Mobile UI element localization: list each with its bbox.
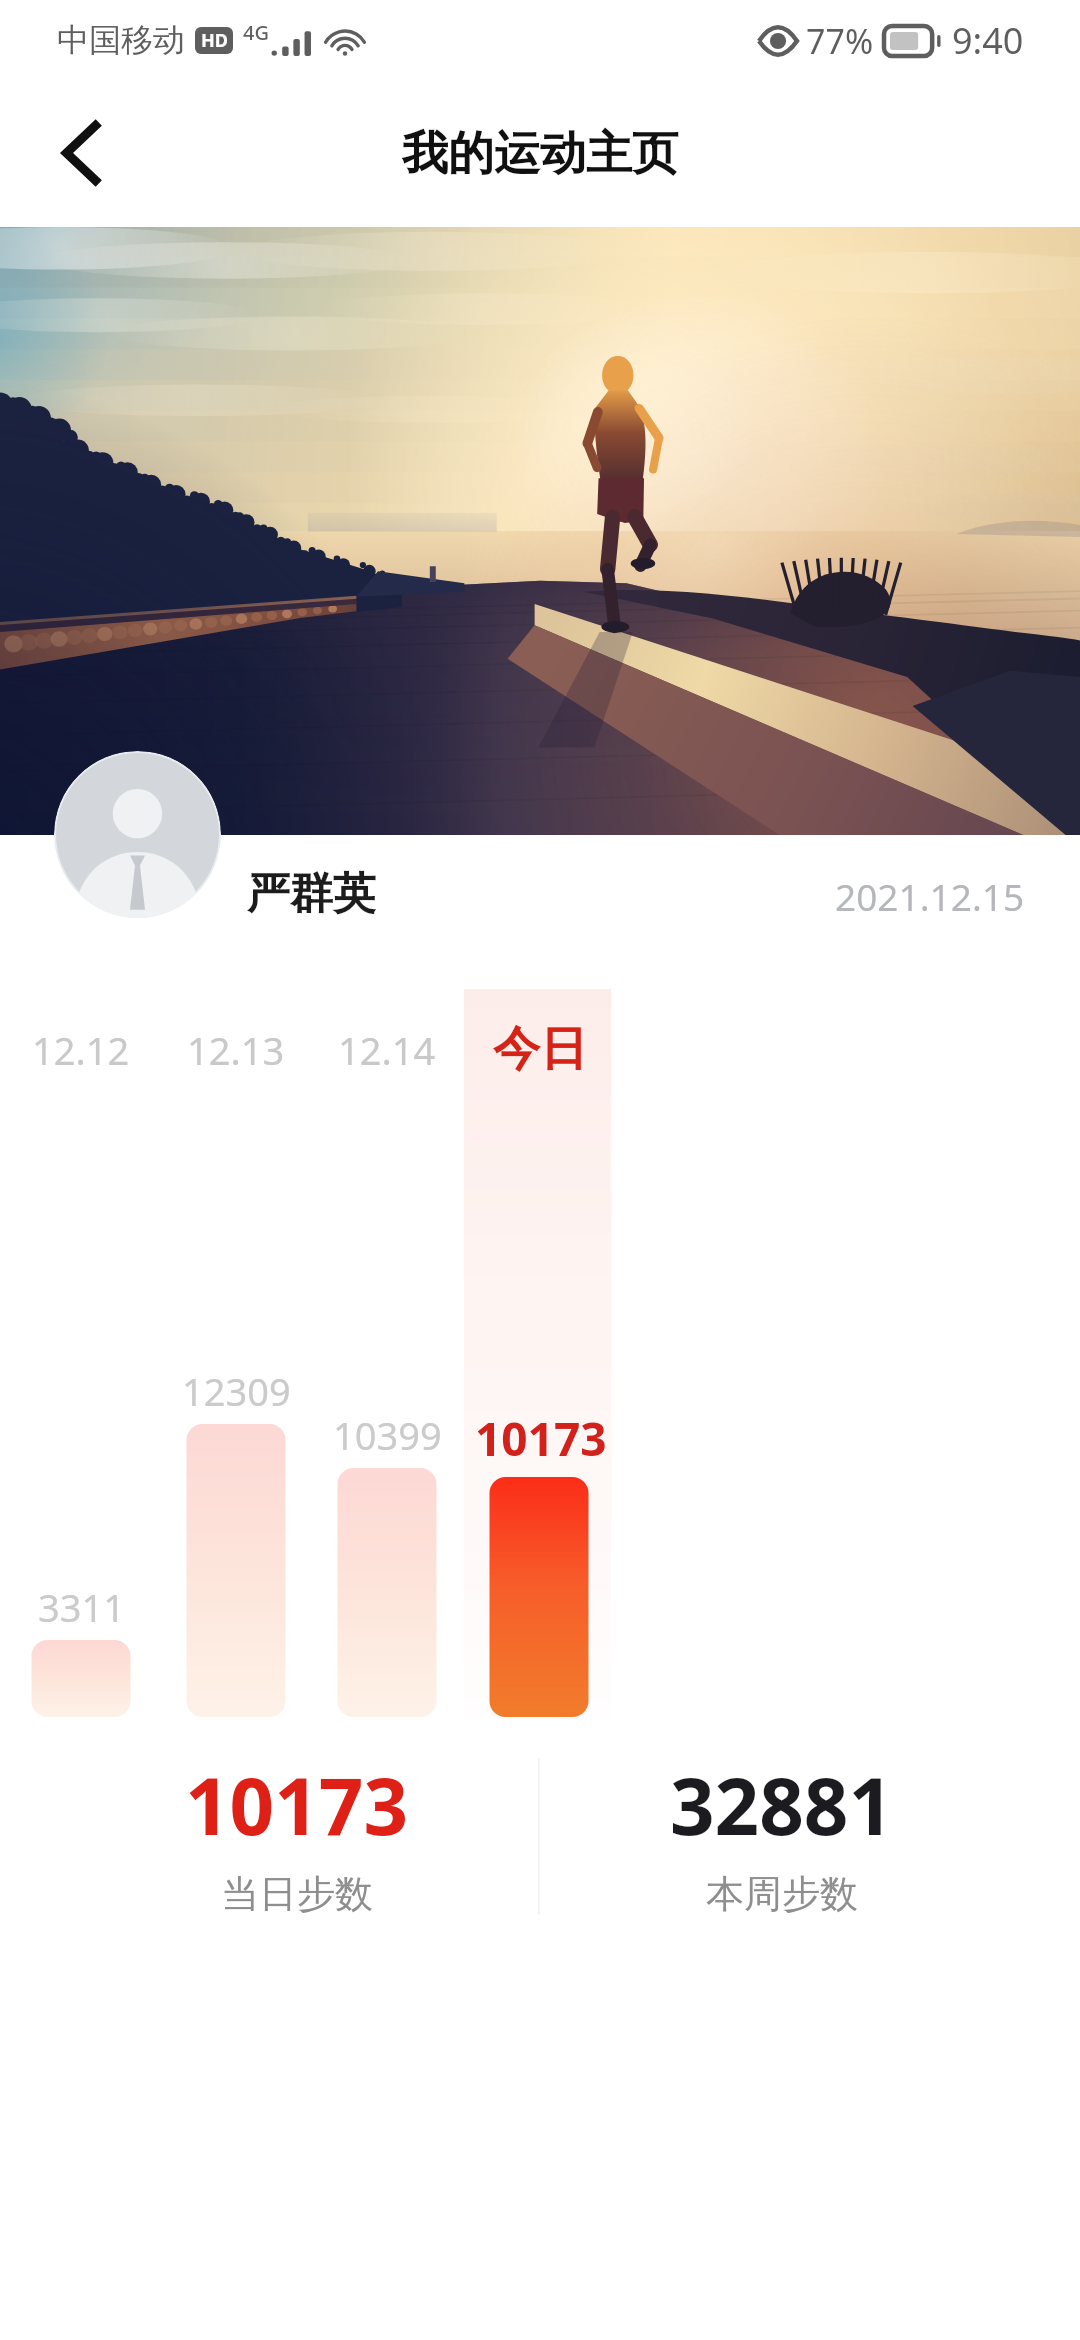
staticText: HD	[201, 28, 228, 53]
staticText: 当日步数	[221, 1870, 373, 1918]
staticText: 12309	[182, 1365, 291, 1417]
staticText: 2021.12.15	[835, 871, 1025, 921]
staticText: 4G	[243, 19, 269, 46]
staticText: 9:40	[952, 16, 1024, 65]
staticText: 今日	[493, 1020, 587, 1079]
staticText: 77%	[806, 18, 874, 64]
staticText: 10173	[185, 1752, 409, 1858]
staticText: 我的运动主页	[402, 125, 678, 183]
staticText: 12.13	[187, 1024, 285, 1076]
staticText: 12.12	[32, 1024, 130, 1076]
staticText: 10173	[475, 1407, 607, 1470]
staticText: 10399	[333, 1409, 442, 1461]
staticText: 本周步数	[706, 1870, 858, 1918]
button[interactable]: 10173	[47, 1752, 547, 1918]
staticText: 32881	[670, 1752, 894, 1858]
staticText: 12.14	[338, 1024, 436, 1076]
staticText: 3311	[38, 1581, 125, 1633]
button[interactable]: Back	[0, 80, 152, 227]
button[interactable]: 32881	[532, 1752, 1032, 1918]
staticText: 严群英	[247, 867, 376, 921]
staticText: 中国移动	[57, 20, 185, 60]
